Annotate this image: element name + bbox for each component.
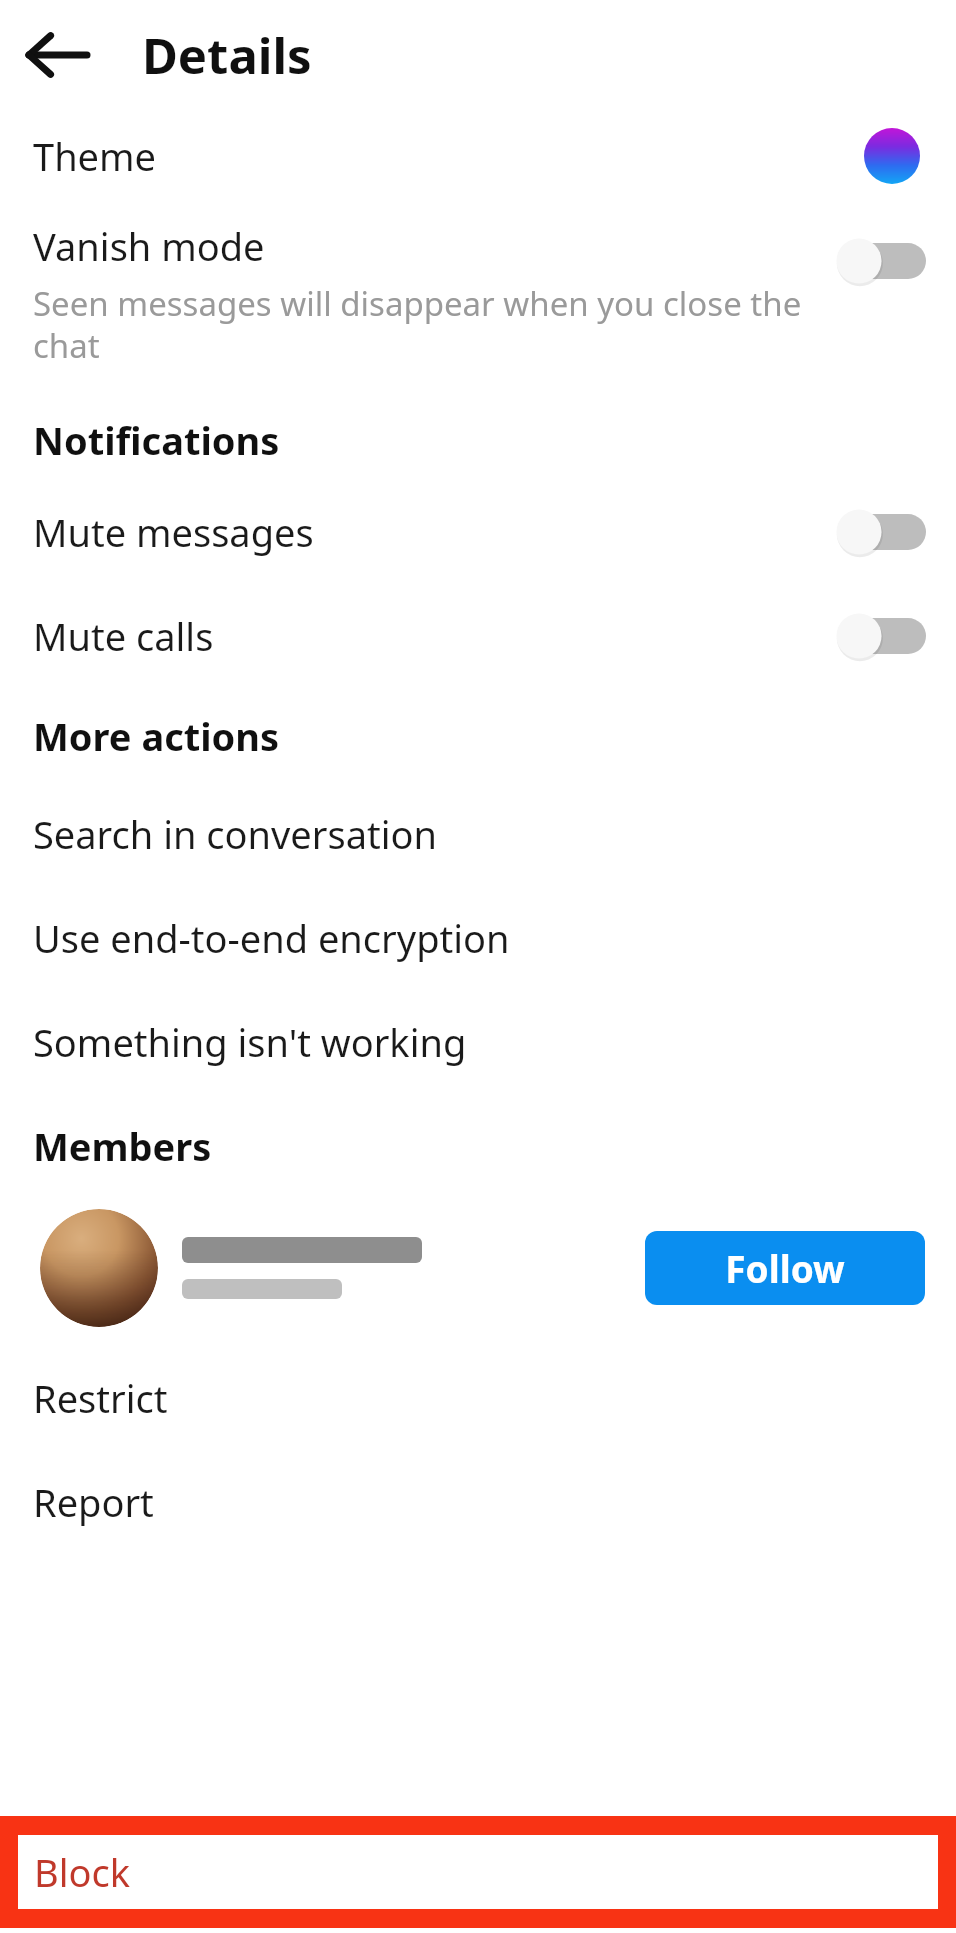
staticText: Use end-to-end encryption bbox=[33, 912, 510, 964]
button[interactable]: Block bbox=[18, 1835, 938, 1909]
button[interactable]: Vanish mode bbox=[0, 210, 956, 378]
staticText: Report bbox=[33, 1476, 154, 1528]
button[interactable]: Restrict bbox=[0, 1370, 956, 1426]
staticText: Mute messages bbox=[33, 506, 836, 558]
button[interactable]: Toggle off bbox=[836, 509, 926, 555]
button[interactable]: Theme bbox=[0, 110, 956, 202]
button[interactable]: Follow bbox=[645, 1231, 925, 1305]
staticText: Follow bbox=[725, 1243, 845, 1293]
button[interactable]: Toggle off bbox=[836, 238, 926, 284]
staticText: More actions bbox=[33, 710, 280, 762]
staticText: Vanish mode bbox=[33, 220, 265, 272]
button[interactable]: Mute calls bbox=[0, 608, 956, 664]
staticText: Block bbox=[34, 1846, 131, 1898]
button[interactable]: Mute messages bbox=[0, 504, 956, 560]
staticText: Members bbox=[33, 1120, 212, 1172]
staticText: Details bbox=[142, 22, 312, 89]
button[interactable]: Toggle off bbox=[836, 613, 926, 659]
button[interactable]: Report bbox=[0, 1474, 956, 1530]
button[interactable]: Use end-to-end encryption bbox=[0, 910, 956, 966]
button[interactable]: Search in conversation bbox=[0, 806, 956, 862]
staticText: Theme bbox=[33, 130, 864, 182]
staticText: Seen messages will disappear when you cl… bbox=[33, 281, 812, 368]
staticText: Restrict bbox=[33, 1372, 168, 1424]
button[interactable]: Back bbox=[18, 15, 98, 95]
staticText: Search in conversation bbox=[33, 808, 437, 860]
button[interactable]: Something isn't working bbox=[0, 1014, 956, 1070]
staticText: Something isn't working bbox=[33, 1016, 467, 1068]
staticText: Mute calls bbox=[33, 610, 836, 662]
button[interactable]: Follow bbox=[0, 1198, 956, 1338]
staticText: Notifications bbox=[33, 414, 280, 466]
